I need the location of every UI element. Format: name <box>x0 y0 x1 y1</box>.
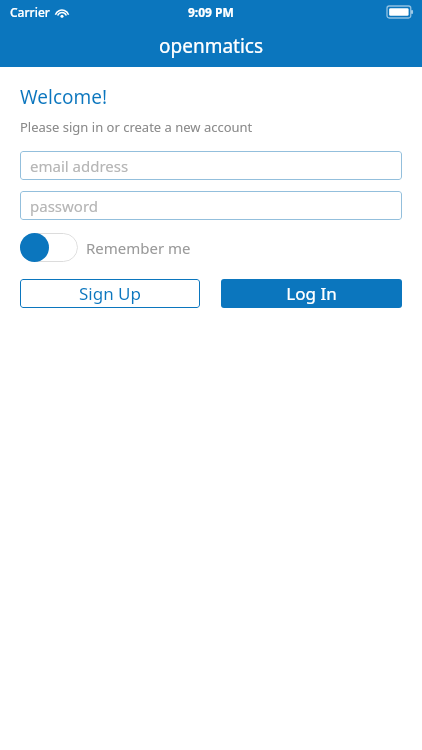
button[interactable]: password <box>20 191 402 220</box>
staticText: Remember me <box>86 238 191 258</box>
staticText: email address <box>30 156 129 176</box>
button[interactable]: Remember me toggle <box>20 233 78 262</box>
staticText: openmatics <box>159 33 264 59</box>
staticText: Log In <box>286 282 337 305</box>
button[interactable]: email address <box>20 151 402 180</box>
staticText: Sign Up <box>79 282 141 305</box>
staticText: password <box>30 196 98 216</box>
button[interactable]: Sign Up <box>20 279 200 308</box>
staticText: Welcome! <box>20 84 108 110</box>
staticText: Carrier <box>10 4 50 20</box>
button[interactable]: Log In <box>221 279 402 308</box>
staticText: Please sign in or create a new account <box>20 118 253 136</box>
staticText: 9:09 PM <box>188 4 234 20</box>
